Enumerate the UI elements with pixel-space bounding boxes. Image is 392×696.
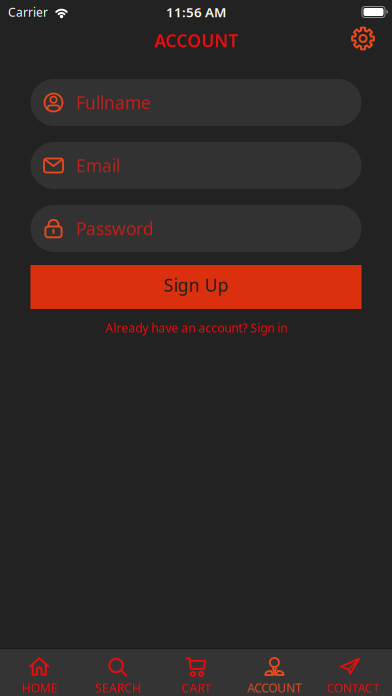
button[interactable]: CART [157,649,235,696]
button[interactable]: Sign Up [30,265,361,309]
staticText: CONTACT [326,680,379,696]
staticText: 11:56 AM [166,3,226,21]
staticText: Fullname [75,91,150,114]
button[interactable] [350,25,376,55]
staticText: HOME [21,680,57,696]
button[interactable]: ACCOUNT [235,649,314,696]
button[interactable]: Password [30,205,361,252]
button[interactable]: HOME [0,649,78,696]
staticText: ACCOUNT [154,29,238,52]
staticText: Sign Up [163,273,228,296]
staticText: SEARCH [95,680,141,696]
staticText: Email [75,154,119,177]
staticText: Carrier [8,4,48,20]
button[interactable]: Email [30,142,361,189]
staticText: CART [181,680,211,696]
button[interactable]: Fullname [30,79,361,126]
staticText: Already have an account? Sign in [105,320,287,336]
staticText: ACCOUNT [247,680,302,696]
button[interactable]: Already have an account? Sign in [105,320,287,336]
button[interactable]: SEARCH [78,649,157,696]
staticText: Password [75,217,153,240]
button[interactable]: CONTACT [314,649,392,696]
